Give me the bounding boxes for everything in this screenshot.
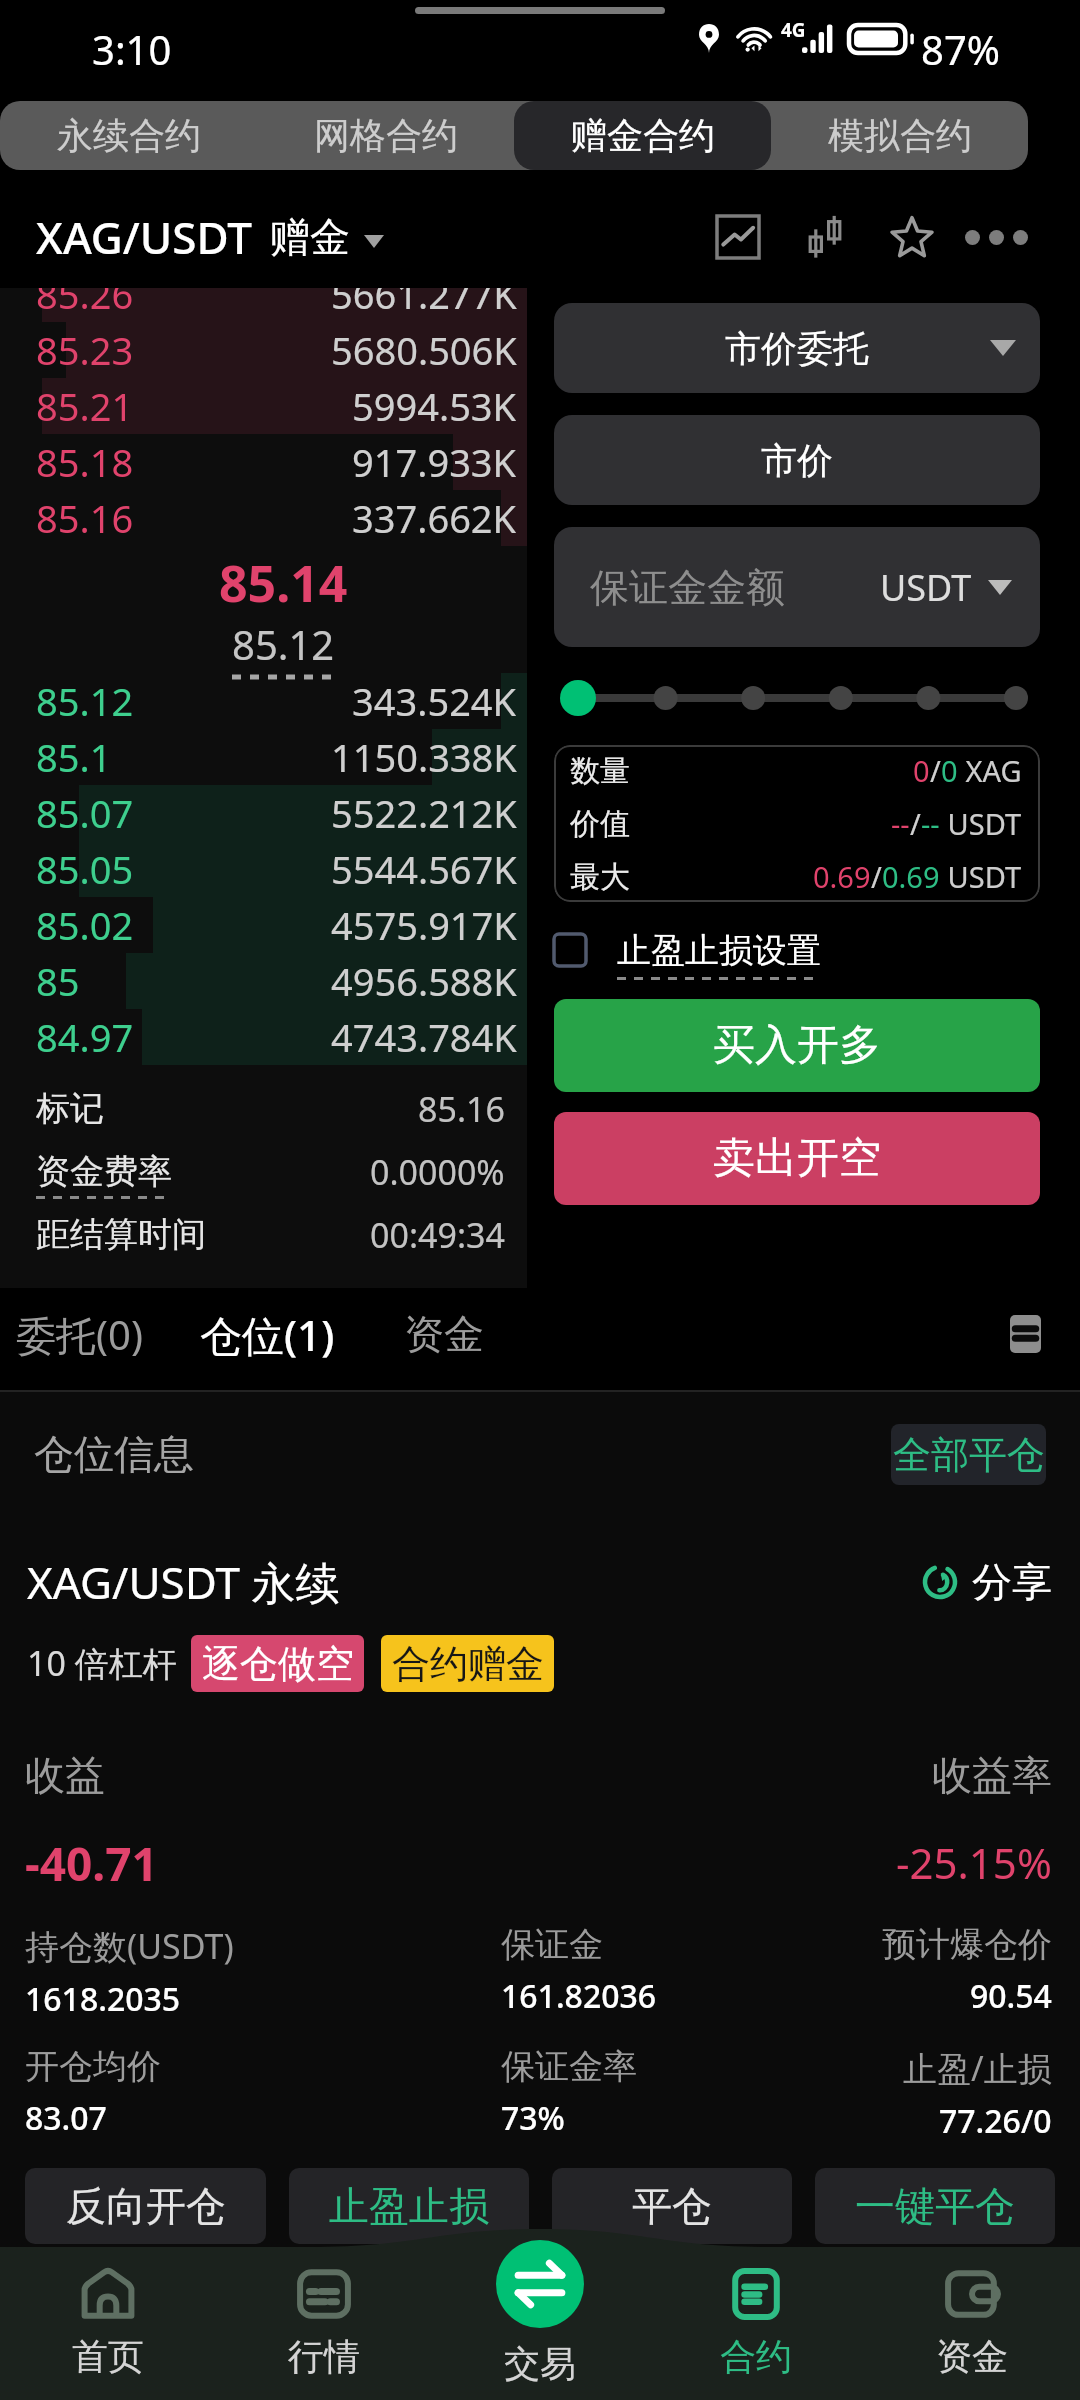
button[interactable]: 委托(0) (2, 1282, 157, 1386)
staticText: 资金 (936, 2334, 1008, 2379)
staticText: -- (891, 804, 910, 843)
button[interactable]: 平仓 (552, 2168, 792, 2244)
staticText: 0.0000% (370, 1149, 505, 1195)
staticText: XAG (958, 751, 1022, 790)
staticText: 10 倍杠杆 (27, 1640, 177, 1686)
staticText: 83.07 (25, 2096, 107, 2140)
staticText: 1150.338K (331, 731, 517, 783)
button[interactable]: Candlestick chart (793, 186, 861, 288)
staticText: 77.26/0 (939, 2099, 1052, 2143)
button[interactable]: 市价委托 (554, 303, 1040, 393)
staticText: 价值 (570, 805, 630, 843)
button[interactable]: 仓位(1) (186, 1282, 349, 1386)
staticText: 161.82036 (501, 1974, 657, 2018)
button[interactable]: 84.97 (0, 1009, 527, 1065)
staticText: XAG/USDT 永续 (27, 1552, 340, 1612)
staticText: 止盈/止损 (903, 2045, 1052, 2091)
staticText: -- (921, 804, 940, 843)
button[interactable]: Filter (1000, 1309, 1050, 1359)
button[interactable]: 止盈止损 (289, 2168, 529, 2244)
staticText: 0.69 (813, 857, 871, 896)
button[interactable]: 85.16 (0, 490, 527, 546)
staticText: 全部平仓 (893, 1431, 1045, 1479)
staticText: 收益率 (932, 1750, 1052, 1800)
staticText: 0 (941, 751, 958, 790)
staticText: 4G (781, 17, 806, 43)
button[interactable]: 85.18 (0, 434, 527, 490)
button[interactable]: 85.12 (0, 673, 527, 729)
staticText: 永续合约 (57, 113, 201, 158)
staticText: 5522.212K (331, 787, 517, 839)
button[interactable]: 合约 (648, 2214, 864, 2400)
staticText: 90.54 (970, 1974, 1052, 2018)
staticText: 85.05 (36, 843, 134, 895)
staticText: 市价 (761, 438, 833, 483)
button[interactable]: 永续合约 (0, 101, 257, 170)
staticText: 5661.277K (331, 288, 517, 320)
button[interactable]: 赠金合约 (514, 101, 771, 170)
button[interactable]: Favorite (878, 186, 946, 288)
button[interactable]: Amount slider (554, 677, 1040, 719)
button[interactable]: 行情 (216, 2214, 432, 2400)
staticText: 止盈止损设置 (617, 929, 821, 972)
button[interactable]: 85 (0, 953, 527, 1009)
button[interactable]: 止盈止损设置 (554, 914, 1040, 986)
button[interactable]: 网格合约 (257, 101, 514, 170)
staticText: 87% (921, 22, 1000, 76)
staticText: 买入开多 (713, 1019, 881, 1072)
staticText: 距结算时间 (36, 1213, 206, 1256)
staticText: 网格合约 (314, 113, 458, 158)
button[interactable]: 保证金金额 (554, 527, 1040, 647)
other: Switch symbol (364, 235, 384, 248)
button[interactable]: 85.21 (0, 378, 527, 434)
button[interactable]: 市价 (554, 415, 1040, 505)
button[interactable]: 85.07 (0, 785, 527, 841)
button[interactable]: 85.26 (0, 288, 527, 322)
staticText: / (930, 751, 941, 790)
staticText: 3:10 (92, 22, 172, 76)
staticText: 85 (36, 955, 80, 1007)
staticText: 卖出开空 (713, 1132, 881, 1185)
staticText: 4575.917K (331, 899, 517, 951)
staticText: 交易 (504, 2341, 576, 2386)
staticText: 5994.53K (352, 380, 517, 432)
button[interactable]: 85.23 (0, 322, 527, 378)
button[interactable]: 模拟合约 (771, 101, 1028, 170)
staticText: 赠金 (270, 212, 350, 262)
button[interactable]: More options (962, 186, 1030, 288)
staticText: 行情 (288, 2334, 360, 2379)
button[interactable]: Trade (496, 2240, 584, 2328)
button[interactable]: 85.1 (0, 729, 527, 785)
staticText: 仓位信息 (34, 1429, 194, 1479)
button[interactable]: 首页 (0, 2214, 216, 2400)
button[interactable]: 全部平仓 (891, 1424, 1046, 1485)
staticText: / (871, 857, 882, 896)
staticText: 85.23 (36, 324, 134, 376)
staticText: 委托(0) (16, 1307, 143, 1362)
staticText: -25.15% (896, 1834, 1052, 1891)
staticText: 84.97 (36, 1011, 134, 1063)
button[interactable]: 分享 (922, 1557, 1052, 1607)
button[interactable]: 资金 (864, 2214, 1080, 2400)
button[interactable]: 85.05 (0, 841, 527, 897)
staticText: 合约赠金 (392, 1640, 544, 1688)
staticText: 标记 (36, 1087, 104, 1130)
button[interactable]: 资金 (390, 1282, 498, 1386)
staticText: 保证金 (501, 1923, 603, 1966)
button[interactable]: 一键平仓 (815, 2168, 1055, 2244)
button[interactable]: 卖出开空 (554, 1112, 1040, 1205)
staticText: 持仓数(USDT) (25, 1923, 234, 1969)
staticText: USDT (940, 857, 1022, 896)
staticText: 分享 (972, 1557, 1052, 1607)
button[interactable]: 反向开仓 (25, 2168, 266, 2244)
staticText: 85.07 (36, 787, 134, 839)
staticText: XAG/USDT (36, 207, 252, 267)
button[interactable]: 买入开多 (554, 999, 1040, 1092)
staticText: / (910, 804, 921, 843)
staticText: 首页 (72, 2334, 144, 2379)
button[interactable]: 85.02 (0, 897, 527, 953)
staticText: 保证金率 (501, 2045, 637, 2088)
button[interactable]: Line chart (704, 186, 772, 288)
staticText: 85.21 (36, 380, 134, 432)
staticText: 1618.2035 (25, 1977, 181, 2021)
